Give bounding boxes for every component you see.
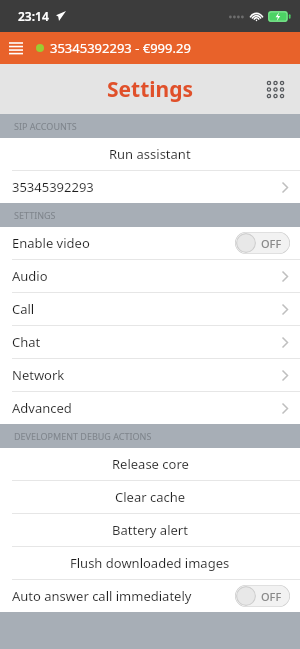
staticText: SIP ACCOUNTS bbox=[14, 120, 77, 132]
button[interactable]: Chat bbox=[0, 326, 300, 358]
staticText: Flush downloaded images bbox=[70, 554, 230, 572]
button[interactable]: Clear cache bbox=[0, 481, 300, 513]
button[interactable]: Run assistant bbox=[0, 138, 300, 170]
staticText: 35345392293 - €999.29 bbox=[50, 39, 191, 57]
staticText: Advanced bbox=[12, 399, 282, 417]
staticText: Network bbox=[12, 366, 282, 384]
button[interactable]: OFF bbox=[235, 585, 290, 607]
button[interactable]: Release core bbox=[0, 448, 300, 480]
staticText: Release core bbox=[112, 455, 189, 473]
button[interactable]: Call bbox=[0, 293, 300, 325]
staticText: Audio bbox=[12, 267, 282, 285]
staticText: Call bbox=[12, 300, 282, 318]
button[interactable]: Menu bbox=[0, 32, 32, 64]
button[interactable]: Flush downloaded images bbox=[0, 547, 300, 579]
staticText: 35345392293 bbox=[12, 178, 282, 196]
staticText: OFF bbox=[261, 589, 282, 604]
staticText: Clear cache bbox=[115, 488, 186, 506]
staticText: Chat bbox=[12, 333, 282, 351]
staticText: Enable video bbox=[12, 234, 235, 252]
button[interactable]: Dialpad bbox=[260, 74, 290, 104]
button[interactable]: Battery alert bbox=[0, 514, 300, 546]
staticText: Battery alert bbox=[112, 521, 188, 539]
staticText: DEVELOPMENT DEBUG ACTIONS bbox=[14, 430, 152, 442]
staticText: Settings bbox=[107, 75, 194, 104]
button[interactable]: Audio bbox=[0, 260, 300, 292]
button[interactable]: Enable video bbox=[0, 227, 300, 259]
button[interactable]: Network bbox=[0, 359, 300, 391]
staticText: Auto answer call immediately bbox=[12, 587, 235, 605]
button[interactable]: OFF bbox=[235, 232, 290, 254]
staticText: 23:14 bbox=[18, 8, 49, 24]
button[interactable]: 35345392293 bbox=[0, 171, 300, 203]
staticText: Run assistant bbox=[109, 145, 191, 163]
button[interactable]: Advanced bbox=[0, 392, 300, 424]
staticText: OFF bbox=[261, 236, 282, 251]
staticText: SETTINGS bbox=[14, 209, 56, 221]
button[interactable]: Auto answer call immediately bbox=[0, 580, 300, 612]
